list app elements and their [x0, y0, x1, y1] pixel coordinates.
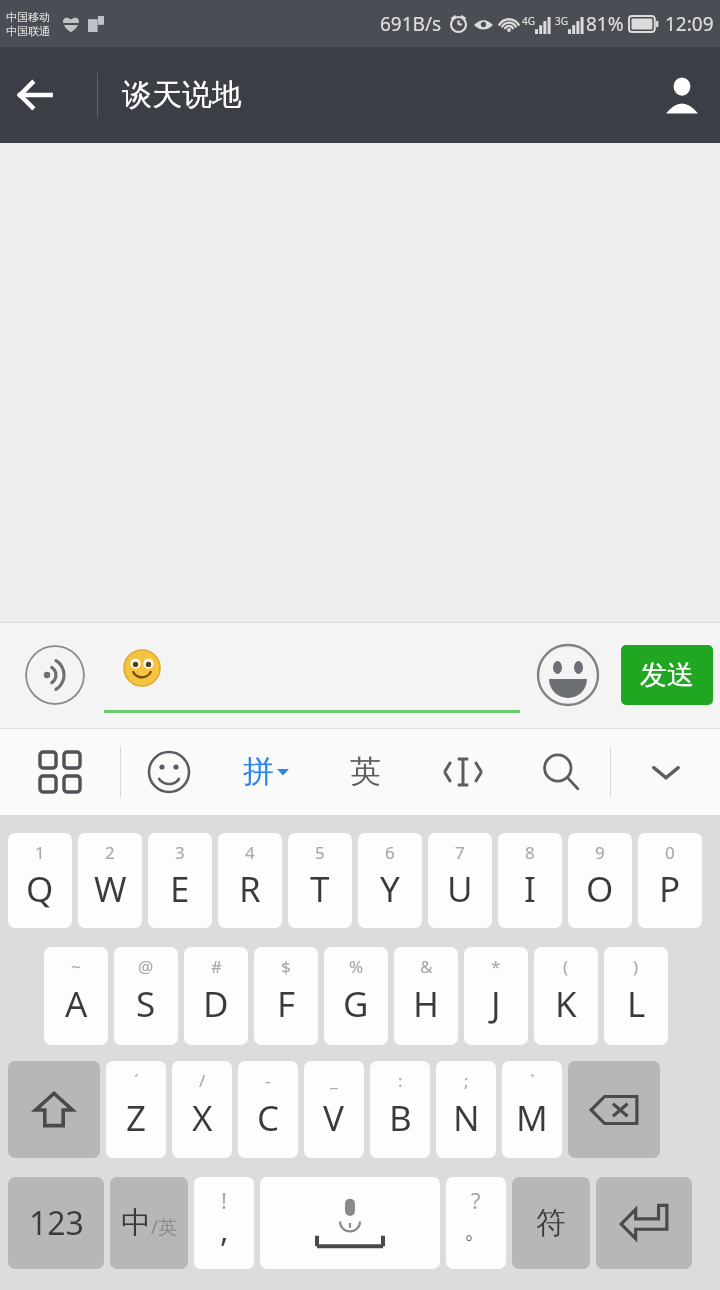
staticText: 1 [35, 841, 45, 864]
staticText: E [170, 865, 190, 913]
button[interactable]: Profile [644, 57, 720, 133]
button[interactable]: Back [0, 60, 70, 130]
button[interactable]: 4 [218, 833, 282, 928]
button[interactable]: ( [534, 947, 598, 1045]
staticText: J [491, 980, 501, 1028]
button[interactable]: 6 [358, 833, 422, 928]
button[interactable]: 3 [148, 833, 212, 928]
button[interactable]: Voice input [25, 645, 85, 705]
button[interactable]: 8 [498, 833, 562, 928]
other: Shift [31, 1087, 77, 1133]
other: Backspace [588, 1084, 640, 1136]
staticText: 691B/s [380, 11, 442, 37]
staticText: 4G [522, 14, 535, 28]
button[interactable]: 1 [8, 833, 72, 928]
button[interactable]: Enter [596, 1177, 692, 1269]
staticText: $ [281, 955, 291, 978]
button[interactable]: ´ [106, 1061, 166, 1158]
staticText: D [203, 980, 229, 1028]
staticText: H [413, 980, 439, 1028]
button[interactable]: & [394, 947, 458, 1045]
button[interactable]: / [172, 1061, 232, 1158]
button[interactable]: ? [446, 1177, 506, 1269]
staticText: : [398, 1069, 403, 1092]
staticText: 9 [595, 841, 605, 864]
staticText: 发送 [640, 658, 694, 692]
staticText: 中国移动 [6, 10, 50, 24]
button[interactable]: Search [512, 728, 610, 815]
staticText: % [349, 955, 364, 978]
staticText: - [265, 1069, 271, 1092]
staticText: 谈天说地 [122, 76, 242, 114]
button[interactable]: % [324, 947, 388, 1045]
staticText: U [447, 865, 473, 913]
staticText: * [491, 955, 501, 978]
staticText: _ [330, 1069, 338, 1092]
staticText: & [420, 955, 433, 978]
staticText: K [555, 980, 577, 1028]
button[interactable]: - [238, 1061, 298, 1158]
staticText: X [192, 1094, 213, 1142]
staticText: O [586, 865, 614, 913]
staticText: 英 [350, 752, 381, 791]
staticText: / [199, 1069, 206, 1092]
button[interactable]: : [370, 1061, 430, 1158]
button[interactable]: ~ [44, 947, 108, 1045]
staticText: L [627, 980, 646, 1028]
button[interactable]: 5 [288, 833, 352, 928]
staticText: 3 [175, 841, 185, 864]
button[interactable]: Shift [8, 1061, 100, 1158]
staticText: 12:09 [665, 11, 714, 37]
button[interactable]: Emoji [536, 643, 600, 707]
staticText: 中国联通 [6, 24, 50, 38]
staticText: 3G [555, 14, 568, 28]
button[interactable]: 符 [512, 1177, 590, 1269]
button[interactable]: 拼 [216, 728, 316, 815]
staticText: ~ [71, 955, 81, 978]
staticText: Z [126, 1094, 147, 1142]
button[interactable]: 123 [8, 1177, 104, 1269]
staticText: /英 [151, 1214, 178, 1240]
button[interactable]: ) [604, 947, 668, 1045]
button[interactable]: * [464, 947, 528, 1045]
button[interactable]: 发送 [621, 645, 713, 705]
staticText: R [239, 865, 261, 913]
button[interactable]: Backspace [568, 1061, 660, 1158]
button[interactable]: 0 [638, 833, 702, 928]
button[interactable]: ` [502, 1061, 562, 1158]
staticText: I [524, 865, 536, 913]
staticText: ? [471, 1185, 481, 1215]
staticText: ( [563, 955, 569, 978]
staticText: Q [26, 865, 54, 913]
button[interactable]: 7 [428, 833, 492, 928]
staticText: G [343, 980, 369, 1028]
staticText: F [277, 980, 296, 1028]
button[interactable]: # [184, 947, 248, 1045]
staticText: Y [380, 865, 400, 913]
button[interactable]: Cursor move [414, 728, 512, 815]
button[interactable]: 2 [78, 833, 142, 928]
button[interactable]: ! [194, 1177, 254, 1269]
staticText: V [323, 1094, 345, 1142]
staticText: 0 [665, 841, 675, 864]
button[interactable]: Keyboard menu [0, 728, 120, 815]
button[interactable]: 英 [316, 728, 414, 815]
staticText: 8 [525, 841, 535, 864]
staticText: ! [221, 1185, 227, 1215]
staticText: P [659, 865, 681, 913]
staticText: # [211, 955, 222, 978]
button[interactable]: 中 [110, 1177, 188, 1269]
button[interactable]: Space [260, 1177, 440, 1269]
button[interactable]: 9 [568, 833, 632, 928]
staticText: A [65, 980, 88, 1028]
button[interactable]: ; [436, 1061, 496, 1158]
staticText: 符 [536, 1204, 566, 1242]
button[interactable]: Hide keyboard [611, 728, 720, 815]
button[interactable]: Emoji panel [121, 728, 216, 815]
staticText: 6 [385, 841, 395, 864]
button[interactable]: $ [254, 947, 318, 1045]
button[interactable]: @ [114, 947, 178, 1045]
button[interactable]: _ [304, 1061, 364, 1158]
staticText: 。 [464, 1215, 488, 1245]
